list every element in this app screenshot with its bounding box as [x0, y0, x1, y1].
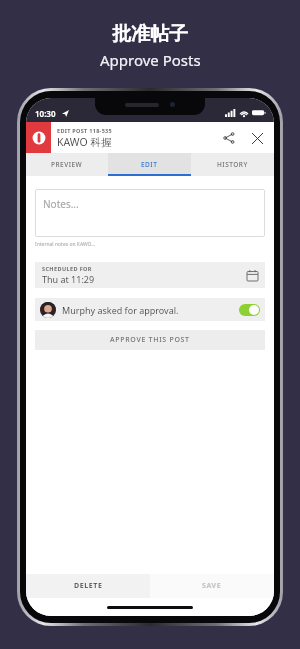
- staticText: Thu at 11:29: [42, 273, 95, 285]
- staticText: Notes...: [43, 197, 79, 211]
- staticText: EDIT: [141, 160, 158, 169]
- button[interactable]: Share: [216, 125, 242, 151]
- staticText: 批准帖子: [112, 22, 188, 46]
- staticText: EDIT POST 118-535: [57, 127, 112, 134]
- staticText: SCHEDULED FOR: [42, 265, 92, 272]
- button[interactable]: HISTORY: [191, 153, 274, 176]
- button[interactable]: PREVIEW: [26, 153, 108, 176]
- button[interactable]: Approval toggle: [239, 304, 260, 316]
- button[interactable]: Close: [244, 125, 270, 151]
- staticText: HISTORY: [217, 160, 248, 169]
- button[interactable]: DELETE: [26, 574, 150, 598]
- staticText: 10:30: [35, 108, 56, 119]
- button[interactable]: APPROVE THIS POST: [35, 330, 265, 350]
- staticText: KAWO 科握: [57, 135, 112, 149]
- staticText: APPROVE THIS POST: [110, 335, 190, 345]
- button[interactable]: SAVE: [150, 574, 274, 598]
- staticText: Murphy asked for approval.: [62, 304, 239, 316]
- staticText: DELETE: [74, 581, 103, 591]
- staticText: PREVIEW: [51, 160, 83, 169]
- button[interactable]: Murphy asked for approval.: [35, 298, 265, 321]
- staticText: Approve Posts: [100, 50, 201, 70]
- staticText: Internal notes on KAWO...: [35, 241, 96, 248]
- button[interactable]: EDIT: [108, 153, 191, 176]
- button[interactable]: SCHEDULED FOR: [35, 262, 265, 288]
- staticText: SAVE: [202, 581, 222, 591]
- button[interactable]: Notes...: [35, 189, 265, 237]
- button[interactable]: KAWO logo: [26, 122, 51, 153]
